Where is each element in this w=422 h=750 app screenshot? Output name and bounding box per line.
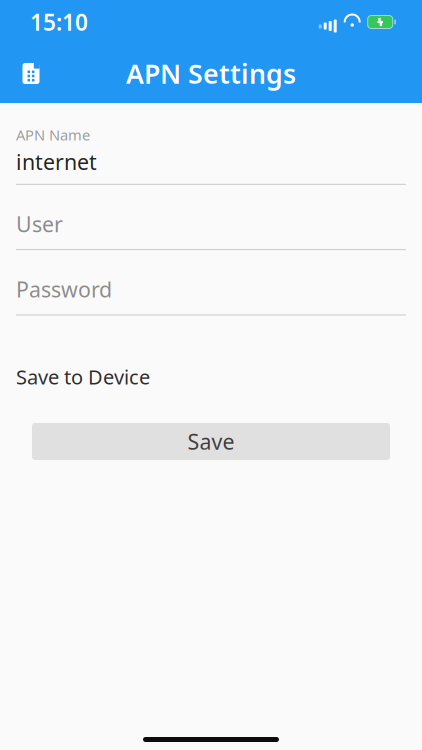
button[interactable]: SIM card xyxy=(9,51,53,95)
staticText: 15:10 xyxy=(30,7,88,37)
button[interactable]: User xyxy=(0,185,422,250)
button[interactable]: Password xyxy=(0,250,422,315)
staticText: Save xyxy=(187,427,234,456)
staticText: APN Name xyxy=(16,125,90,144)
staticText: User xyxy=(16,210,63,238)
staticText: internet xyxy=(16,147,97,176)
button[interactable]: Save xyxy=(32,423,390,460)
button[interactable]: APN Name xyxy=(0,103,422,185)
staticText: APN Settings xyxy=(126,56,296,91)
staticText: Password xyxy=(16,275,112,303)
staticText: Save to Device xyxy=(16,363,150,390)
